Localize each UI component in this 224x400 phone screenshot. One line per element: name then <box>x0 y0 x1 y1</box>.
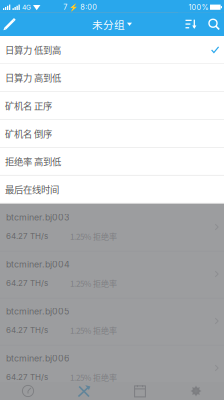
button[interactable]: Settings <box>168 382 224 400</box>
staticText: btcminer.bj006 <box>6 353 69 364</box>
staticText: 最后在线时间 <box>5 182 59 196</box>
button[interactable]: Edit <box>0 12 19 36</box>
staticText: 日算力 高到低 <box>5 71 61 84</box>
staticText: btcminer.bj005 <box>6 306 69 317</box>
button[interactable]: btcminer.bj005 <box>0 298 224 345</box>
staticText: 日算力 低到高 <box>5 43 61 56</box>
button[interactable]: 未分组 <box>92 16 132 32</box>
staticText: 100% <box>188 3 208 12</box>
staticText: btcminer.bj003 <box>6 212 69 223</box>
staticText: 64.27 TH/s <box>6 325 48 335</box>
staticText: 1.25% 拒绝率 <box>70 230 117 242</box>
staticText: 64.27 TH/s <box>6 231 48 241</box>
button[interactable]: btcminer.bj006 <box>0 345 224 392</box>
button[interactable]: btcminer.bj003 <box>0 204 224 251</box>
button[interactable]: Reports <box>112 382 168 400</box>
button[interactable]: 矿机名 正序 <box>0 92 224 120</box>
button[interactable]: Dashboard <box>0 382 56 400</box>
button[interactable]: 日算力 高到低 <box>0 64 224 92</box>
button[interactable]: btcminer.bj004 <box>0 251 224 298</box>
staticText: 64.27 TH/s <box>6 372 48 382</box>
staticText: 矿机名 正序 <box>5 99 52 112</box>
staticText: btcminer.bj004 <box>6 259 70 270</box>
staticText: 矿机名 倒序 <box>5 127 52 140</box>
staticText: 1.25% 拒绝率 <box>70 277 117 289</box>
button[interactable]: 矿机名 倒序 <box>0 120 224 148</box>
staticText: 7 ⚡ 8:00 <box>63 3 97 11</box>
button[interactable]: Miners <box>56 382 112 400</box>
staticText: 未分组 <box>92 16 125 32</box>
button[interactable]: 日算力 低到高 <box>0 36 224 64</box>
button[interactable]: Search <box>204 12 224 36</box>
button[interactable]: 最后在线时间 <box>0 175 224 203</box>
button[interactable]: Sort <box>178 12 204 36</box>
staticText: 拒绝率 高到低 <box>5 154 61 168</box>
staticText: 4G <box>22 3 31 11</box>
button[interactable]: 拒绝率 高到低 <box>0 148 224 175</box>
staticText: 1.25% 拒绝率 <box>70 371 117 383</box>
staticText: 64.27 TH/s <box>6 278 48 288</box>
staticText: 1.25% 拒绝率 <box>70 324 117 336</box>
